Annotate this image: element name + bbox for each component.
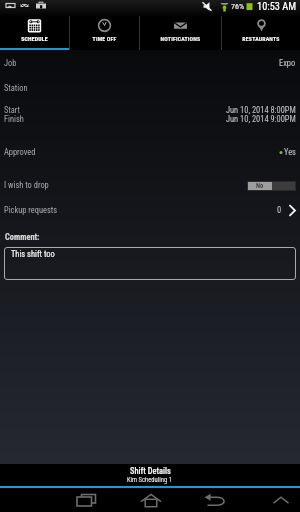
staticText: Expo (279, 58, 296, 68)
staticText: Jun 10, 2014 9:00PM (226, 114, 296, 124)
staticText: Jun 10, 2014 8:00PM (226, 105, 296, 115)
staticText: SCHEDULE (0, 36, 69, 43)
staticText: Start (4, 105, 21, 115)
staticText: RESTAURANTS (222, 36, 300, 43)
staticText: This shift too (11, 249, 55, 259)
staticText: Yes (284, 147, 296, 157)
staticText: 10:53 AM (257, 0, 297, 12)
staticText: Station (4, 83, 28, 93)
button[interactable]: NOTIFICATIONS (140, 16, 221, 50)
button[interactable]: TIME OFF (70, 16, 139, 50)
staticText: Shift Details (130, 466, 171, 476)
staticText: 76% (231, 2, 244, 11)
staticText: I wish to drop (4, 180, 49, 190)
staticText: Kim Scheduling 1 (127, 476, 173, 484)
button[interactable]: Home (137, 488, 165, 512)
button[interactable]: Recent apps (71, 488, 99, 512)
staticText: NOTIFICATIONS (140, 36, 221, 43)
button[interactable]: SCHEDULE (0, 16, 69, 50)
button[interactable]: Pickup requests (0, 200, 300, 220)
button[interactable]: Expand (267, 488, 295, 512)
staticText: No (256, 182, 264, 190)
staticText: Approved (4, 147, 36, 157)
staticText: 0 (277, 205, 282, 215)
staticText: Comment: (5, 232, 40, 242)
staticText: Finish (4, 114, 24, 124)
staticText: TIME OFF (70, 36, 139, 43)
button[interactable]: Back (201, 488, 229, 512)
staticText: Job (4, 58, 17, 68)
button[interactable]: No (247, 181, 296, 191)
button[interactable]: RESTAURANTS (222, 16, 300, 50)
staticText: Pickup requests (4, 205, 58, 215)
